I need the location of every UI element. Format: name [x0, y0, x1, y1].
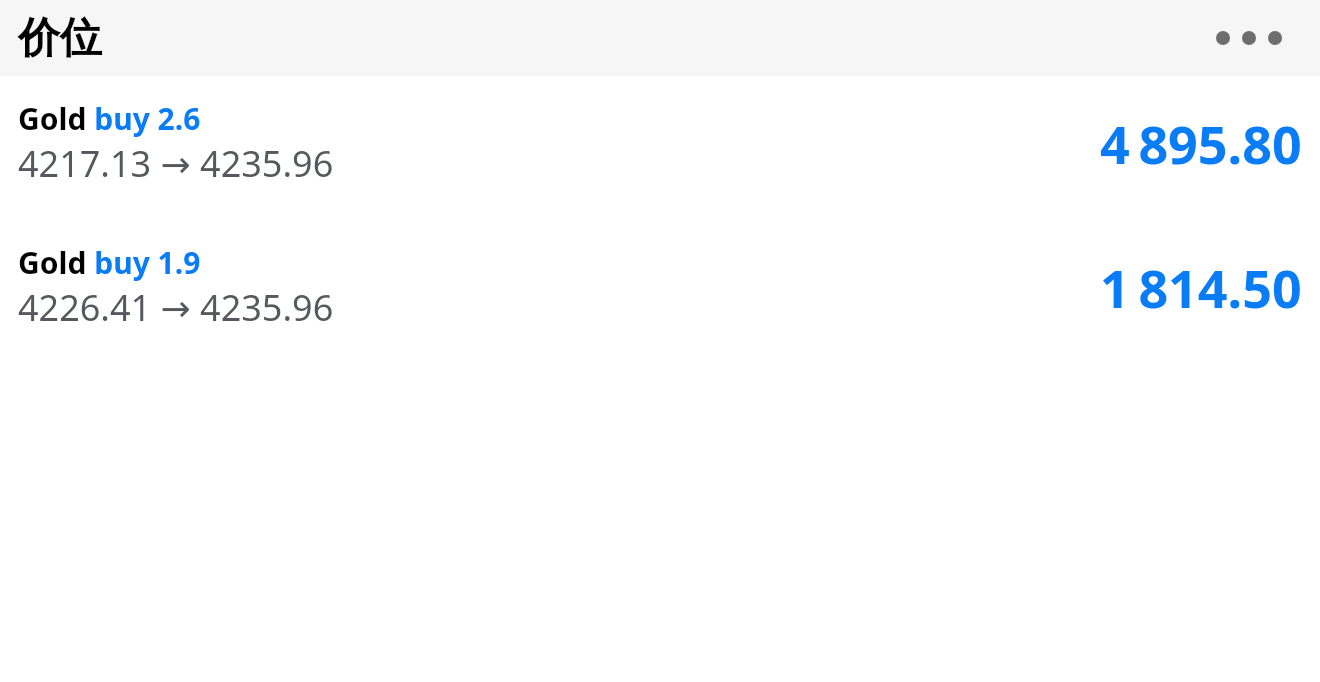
button[interactable]: Gold buy 2.6 [0, 98, 1320, 188]
button[interactable]: Gold buy 1.9 [0, 242, 1320, 332]
staticText: Gold buy 2.6 [18, 98, 201, 139]
staticText: Gold buy 1.9 [18, 242, 201, 283]
staticText: 价位 [18, 12, 102, 65]
staticText: 4217.13 → 4235.96 [18, 139, 334, 188]
staticText: 1 814.50 [1100, 252, 1302, 323]
staticText: 4 895.80 [1100, 108, 1302, 179]
button[interactable]: More options [1208, 23, 1290, 53]
staticText: 4226.41 → 4235.96 [18, 283, 334, 332]
